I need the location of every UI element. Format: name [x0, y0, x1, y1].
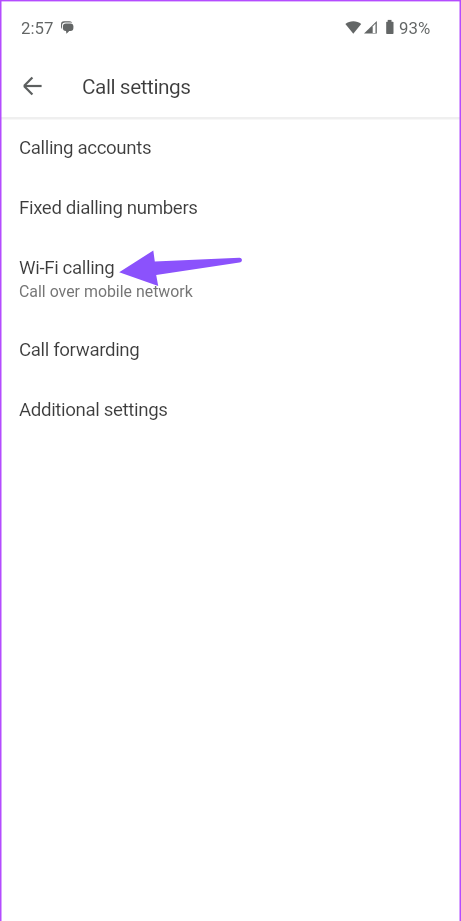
button[interactable]: Wi-Fi calling	[0, 240, 461, 322]
staticText: Fixed dialling numbers	[19, 197, 198, 219]
staticText: Call forwarding	[19, 339, 140, 361]
staticText: Additional settings	[19, 399, 168, 421]
button[interactable]: Navigate up	[9, 62, 57, 110]
button[interactable]: Calling accounts	[0, 120, 461, 180]
button[interactable]: Fixed dialling numbers	[0, 180, 461, 240]
button[interactable]: Call forwarding	[0, 322, 461, 382]
staticText: Call settings	[82, 75, 191, 99]
staticText: Wi-Fi calling	[19, 257, 115, 279]
staticText: 2:57	[21, 18, 54, 38]
button[interactable]: Additional settings	[0, 382, 461, 442]
staticText: Calling accounts	[19, 137, 152, 159]
staticText: Call over mobile network	[19, 282, 193, 301]
staticText: 93%	[399, 18, 431, 38]
